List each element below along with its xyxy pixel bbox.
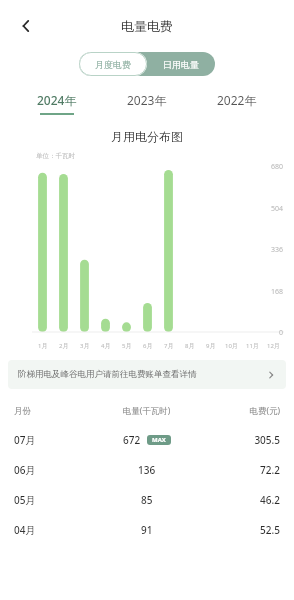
button[interactable]: Back	[8, 8, 44, 44]
button[interactable]: 07月	[0, 425, 294, 455]
staticText: 336	[271, 245, 284, 255]
staticText: 672	[123, 433, 141, 447]
staticText: 5月	[122, 342, 132, 350]
staticText: 11月	[246, 342, 259, 350]
staticText: 2月	[59, 342, 69, 350]
staticText: 月份	[14, 406, 94, 417]
staticText: MAX	[152, 436, 166, 444]
staticText: 6月	[143, 342, 153, 350]
staticText: 单位：千瓦时	[36, 152, 75, 160]
staticText: 06月	[14, 463, 94, 477]
staticText: 1月	[38, 342, 48, 350]
staticText: 85	[141, 493, 153, 507]
staticText: 9月	[206, 342, 216, 350]
staticText: 504	[271, 204, 284, 214]
staticText: 46.2	[199, 493, 280, 507]
button[interactable]: 月度电费	[79, 52, 147, 76]
staticText: 4月	[101, 342, 111, 350]
staticText: 日用电量	[163, 59, 199, 70]
staticText: 10月	[225, 342, 238, 350]
button[interactable]: 04月	[0, 515, 294, 545]
staticText: 月度电费	[95, 59, 131, 70]
button[interactable]: 日用电量	[147, 52, 215, 76]
staticText: 91	[141, 523, 153, 537]
button[interactable]: 05月	[0, 485, 294, 515]
button[interactable]: 阶梯用电及峰谷电用户请前往电费账单查看详情	[8, 360, 286, 389]
staticText: 52.5	[199, 523, 280, 537]
button[interactable]: 2023年	[117, 90, 177, 117]
button[interactable]: 2022年	[207, 90, 267, 117]
staticText: 电量(千瓦时)	[94, 405, 199, 417]
staticText: 04月	[14, 523, 94, 537]
staticText: 72.2	[199, 463, 280, 477]
staticText: 电量电费	[121, 18, 173, 34]
staticText: 3月	[80, 342, 90, 350]
staticText: 2022年	[217, 92, 257, 108]
staticText: 136	[138, 463, 156, 477]
staticText: 7月	[164, 342, 174, 350]
staticText: 阶梯用电及峰谷电用户请前往电费账单查看详情	[18, 369, 266, 380]
staticText: 12月	[267, 342, 280, 350]
button[interactable]: 06月	[0, 455, 294, 485]
button[interactable]: 2024年	[27, 90, 87, 117]
staticText: 05月	[14, 493, 94, 507]
staticText: 2024年	[37, 92, 77, 108]
staticText: 168	[271, 287, 284, 297]
staticText: 07月	[14, 433, 94, 447]
staticText: 电费(元)	[199, 405, 280, 417]
staticText: 8月	[185, 342, 195, 350]
staticText: 305.5	[199, 433, 280, 447]
staticText: 2023年	[127, 92, 167, 108]
staticText: 0	[279, 328, 284, 338]
staticText: 680	[271, 162, 284, 172]
staticText: 月用电分布图	[111, 129, 183, 144]
